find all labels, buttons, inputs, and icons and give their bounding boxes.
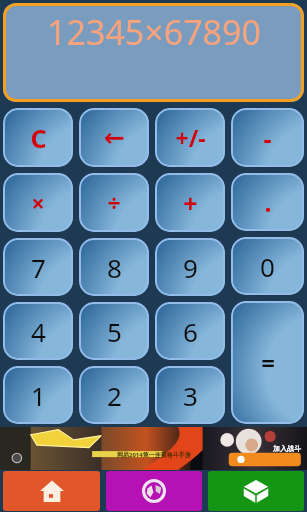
staticText: 3 [183,378,198,413]
staticText: . [264,185,272,219]
button[interactable]: 1 [3,366,73,424]
staticText: = [261,346,275,379]
staticText: ← [104,123,125,152]
staticText: 6 [183,314,198,349]
staticText: 12345×67890 [47,9,261,55]
staticText: 4 [31,314,46,349]
button[interactable]: 9 [155,238,225,296]
button[interactable]: Browser [106,471,202,511]
button[interactable]: ÷ [79,173,149,232]
button[interactable]: 加入战斗 [0,427,307,470]
button[interactable]: Backspace [79,108,149,167]
button[interactable]: 8 [79,238,149,296]
button[interactable]: C [3,108,73,167]
button[interactable]: 4 [3,302,73,360]
staticText: C [30,121,47,155]
staticText: + [183,186,198,220]
staticText: - [263,121,272,155]
staticText: ÷ [107,187,121,218]
staticText: 7 [31,250,46,285]
button[interactable]: +/- [155,108,225,167]
button[interactable]: = [231,301,304,424]
staticText: 网易2014第一连新格斗手游 [117,451,191,459]
button[interactable]: 6 [155,302,225,360]
staticText: 8 [107,250,122,285]
button[interactable]: Apps [208,471,304,511]
button[interactable]: Home [3,471,100,511]
staticText: 9 [183,250,198,285]
staticText: 5 [107,314,122,349]
staticText: 0 [260,249,275,284]
staticText: 加入战斗 [273,444,301,453]
button[interactable]: 0 [231,237,304,295]
button[interactable]: 2 [79,366,149,424]
button[interactable]: 3 [155,366,225,424]
button[interactable]: × [3,173,73,232]
button[interactable]: 7 [3,238,73,296]
button[interactable]: - [231,108,304,167]
staticText: 2 [107,378,122,413]
staticText: +/- [175,122,206,153]
button[interactable]: 5 [79,302,149,360]
button[interactable]: . [231,173,304,231]
button[interactable]: 12345×67890 [3,3,304,102]
button[interactable]: + [155,173,225,232]
staticText: 1 [31,378,46,413]
staticText: × [31,187,45,218]
